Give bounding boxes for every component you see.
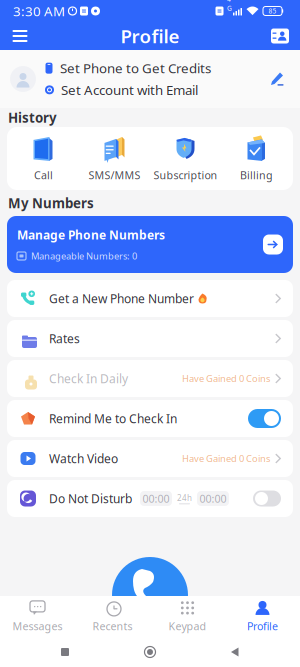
button[interactable]: Subscription <box>150 127 221 190</box>
staticText: 00:00 <box>142 491 169 506</box>
staticText: Set Phone to Get Credits <box>60 59 211 77</box>
button[interactable]: Back <box>215 637 255 667</box>
button[interactable]: Check In Daily <box>7 360 293 397</box>
button[interactable]: Menu <box>0 22 40 50</box>
staticText: Manage Phone Numbers <box>17 227 165 243</box>
button[interactable]: Recent apps <box>45 637 85 667</box>
staticText: 3:30 AM <box>13 2 65 20</box>
button[interactable]: Home <box>130 637 170 667</box>
staticText: Get a New Phone Number <box>49 290 194 306</box>
button[interactable]: Manage Phone Numbers <box>7 216 293 273</box>
staticText: 4G <box>227 0 232 12</box>
button[interactable]: Messages <box>0 596 75 637</box>
staticText: Recents <box>92 619 132 633</box>
button[interactable]: Watch Video <box>7 440 293 477</box>
staticText: My Numbers <box>8 194 94 212</box>
staticText: Remind Me to Check In <box>49 410 177 426</box>
button[interactable]: SMS/MMS <box>79 127 150 190</box>
button[interactable]: Recents <box>75 596 150 637</box>
staticText: Billing <box>240 168 273 182</box>
staticText: 24h <box>177 493 192 503</box>
staticText: Manageable Numbers: 0 <box>31 250 137 262</box>
staticText: Profile <box>120 24 179 48</box>
staticText: Watch Video <box>49 450 118 466</box>
staticText: Check In Daily <box>49 370 128 386</box>
staticText: Subscription <box>153 168 217 182</box>
staticText: Rates <box>49 330 80 346</box>
staticText: Keypad <box>168 619 206 633</box>
button[interactable]: Remind me to check in toggle <box>248 409 281 428</box>
button[interactable]: Keypad <box>150 596 225 637</box>
staticText: Set Account with Email <box>61 81 198 99</box>
staticText: Have Gained 0 Coins <box>182 372 270 385</box>
button[interactable]: Rates <box>7 320 293 357</box>
staticText: Call <box>34 168 53 182</box>
staticText: Profile <box>247 619 278 633</box>
button[interactable]: Call <box>8 127 79 190</box>
staticText: Have Gained 0 Coins <box>182 452 270 465</box>
button[interactable]: Contacts <box>260 22 300 50</box>
staticText: Do Not Disturb <box>49 490 132 506</box>
button[interactable]: Edit profile <box>264 66 290 92</box>
button[interactable]: Profile <box>225 596 300 637</box>
staticText: History <box>8 109 57 126</box>
button[interactable]: Get a New Phone Number <box>7 280 293 317</box>
button[interactable]: Do not disturb toggle <box>253 490 281 506</box>
staticText: Messages <box>12 619 62 633</box>
button[interactable]: Billing <box>221 127 292 190</box>
staticText: SMS/MMS <box>88 168 140 182</box>
staticText: 85 <box>268 7 276 15</box>
staticText: 00:00 <box>199 491 226 506</box>
